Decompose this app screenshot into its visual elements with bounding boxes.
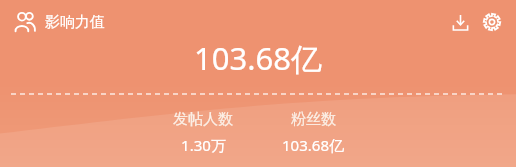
button[interactable]: 影响力值 <box>12 7 107 37</box>
button[interactable]: 粉丝数 <box>261 110 365 155</box>
staticText: 粉丝数 <box>291 110 336 129</box>
button[interactable]: Settings <box>478 8 506 36</box>
staticText: 103.68亿 <box>282 135 344 155</box>
staticText: 1.30万 <box>181 135 226 155</box>
staticText: 发帖人数 <box>173 110 233 129</box>
other: 影响力值 <box>14 11 36 33</box>
button[interactable]: 发帖人数 <box>151 110 255 155</box>
staticText: 103.68亿 <box>194 37 322 79</box>
button[interactable]: Download <box>446 8 474 36</box>
staticText: 影响力值 <box>45 13 105 32</box>
